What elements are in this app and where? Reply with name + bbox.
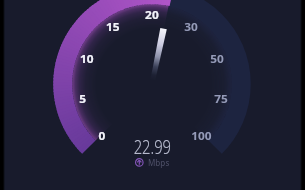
button[interactable]: Speed gauge xyxy=(0,0,305,190)
